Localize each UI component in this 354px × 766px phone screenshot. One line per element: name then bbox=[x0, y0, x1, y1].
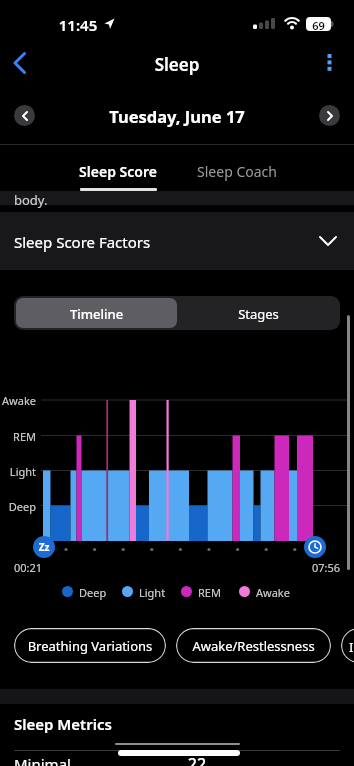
button[interactable] bbox=[313, 46, 345, 80]
button[interactable]: Stages bbox=[177, 296, 340, 330]
staticText: Zz bbox=[33, 540, 55, 554]
staticText: Deep bbox=[79, 585, 107, 600]
staticText: 69 bbox=[306, 18, 331, 33]
staticText: Sleep bbox=[137, 53, 217, 76]
button[interactable]: Awake/Restlessness bbox=[176, 628, 331, 663]
staticText: Awake/Restlessness bbox=[176, 637, 331, 655]
staticText: Sleep Score Factors bbox=[14, 232, 151, 252]
staticText: Sleep Score bbox=[60, 162, 176, 181]
staticText: Sleep Metrics bbox=[14, 714, 112, 734]
button[interactable]: Sleep Score bbox=[60, 148, 176, 192]
staticText: Minimal bbox=[14, 754, 71, 766]
staticText: Awake bbox=[0, 393, 36, 408]
staticText: Deep bbox=[0, 499, 36, 514]
button[interactable]: Breathing Variations bbox=[14, 628, 166, 663]
button[interactable]: Timeline bbox=[16, 298, 177, 328]
staticText: Awake bbox=[256, 585, 290, 600]
button[interactable]: Sleep Coach bbox=[178, 148, 296, 192]
staticText: Timeline bbox=[16, 305, 177, 323]
staticText: body. bbox=[14, 191, 48, 209]
staticText: 07:56 bbox=[300, 560, 340, 575]
staticText: Tuesday, June 17 bbox=[97, 105, 257, 127]
staticText: 11:45 bbox=[56, 15, 100, 35]
button[interactable] bbox=[319, 105, 340, 126]
staticText: Light bbox=[0, 464, 36, 479]
staticText: 22 bbox=[185, 753, 209, 766]
staticText: Sleep Coach bbox=[178, 162, 296, 181]
staticText: I bbox=[349, 638, 354, 656]
staticText: REM bbox=[0, 429, 36, 444]
staticText: Breathing Variations bbox=[14, 637, 166, 655]
staticText: REM bbox=[198, 585, 221, 600]
button[interactable] bbox=[14, 105, 35, 126]
button[interactable]: I bbox=[341, 628, 354, 663]
staticText: 00:21 bbox=[14, 560, 43, 575]
staticText: Light bbox=[139, 585, 166, 600]
button[interactable] bbox=[6, 46, 40, 80]
staticText: Stages bbox=[177, 305, 340, 323]
button[interactable]: Sleep Score Factors bbox=[0, 212, 354, 270]
